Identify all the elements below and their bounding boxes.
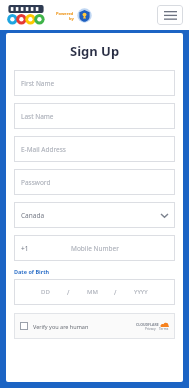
staticText: YYYY	[134, 288, 148, 296]
button[interactable]: E-Mail Address	[14, 136, 175, 162]
button[interactable]: Menu	[157, 5, 183, 25]
staticText: Verify you are human	[33, 323, 89, 330]
staticText: Privacy	[145, 327, 156, 331]
staticText: Last Name	[21, 112, 54, 121]
staticText: Sign Up	[70, 42, 120, 60]
button[interactable]: +1	[14, 235, 175, 261]
button[interactable]: DD	[14, 279, 175, 305]
staticText: Password	[21, 178, 51, 187]
button[interactable]: Canada	[14, 202, 175, 228]
staticText: First Name	[21, 79, 55, 88]
staticText: Powered	[56, 11, 74, 16]
staticText: /	[114, 288, 117, 297]
staticText: Mobile Number	[71, 244, 119, 253]
staticText: MM	[87, 288, 98, 296]
staticText: Terms	[159, 327, 169, 331]
staticText: +1	[21, 244, 29, 253]
staticText: by	[69, 16, 74, 21]
button[interactable]: Verify you are human	[14, 313, 175, 339]
button[interactable]: Last Name	[14, 103, 175, 129]
button[interactable]: First Name	[14, 70, 175, 96]
staticText: DD	[41, 288, 50, 296]
staticText: Canada	[21, 211, 45, 220]
staticText: Date of Birth	[14, 268, 50, 275]
staticText: CLOUDFLARE	[136, 322, 159, 327]
staticText: /	[67, 288, 70, 297]
staticText: E-Mail Address	[21, 145, 66, 154]
button[interactable]: Password	[14, 169, 175, 195]
